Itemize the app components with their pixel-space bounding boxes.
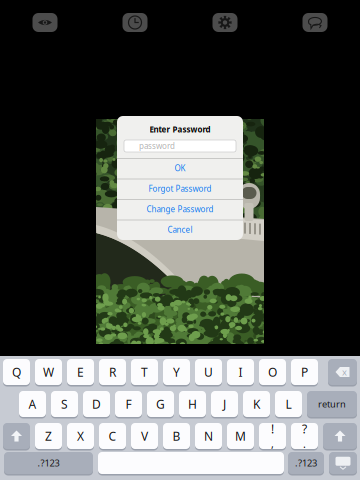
button[interactable] bbox=[323, 423, 357, 450]
button[interactable]: A bbox=[19, 391, 46, 418]
staticText: .?123 bbox=[295, 457, 317, 469]
staticText: K bbox=[253, 396, 260, 412]
staticText: password bbox=[139, 141, 175, 151]
button[interactable]: V bbox=[131, 423, 158, 450]
staticText: Q bbox=[12, 364, 21, 380]
staticText: ? bbox=[302, 421, 307, 437]
staticText: Cancel bbox=[167, 224, 192, 235]
button[interactable]: return bbox=[307, 391, 357, 418]
button[interactable]: Forgot Password bbox=[117, 178, 243, 199]
button[interactable]: N bbox=[195, 423, 222, 450]
button[interactable]: P bbox=[291, 359, 318, 386]
staticText: O bbox=[268, 364, 277, 380]
button[interactable]: G bbox=[147, 391, 174, 418]
button[interactable]: H bbox=[179, 391, 206, 418]
staticText: A bbox=[28, 396, 36, 412]
staticText: H bbox=[188, 396, 197, 412]
staticText: . bbox=[303, 437, 306, 451]
staticText: V bbox=[141, 428, 148, 444]
button[interactable]: X bbox=[67, 423, 94, 450]
staticText: L bbox=[285, 396, 291, 412]
button[interactable]: x bbox=[328, 359, 357, 386]
button[interactable]: .?123 bbox=[4, 452, 93, 475]
staticText: OK bbox=[174, 163, 185, 173]
button[interactable]: Cancel bbox=[117, 219, 243, 240]
button[interactable]: Q bbox=[3, 359, 30, 386]
staticText: R bbox=[109, 364, 116, 380]
staticText: I bbox=[238, 364, 242, 380]
button[interactable]: C bbox=[99, 423, 126, 450]
staticText: T bbox=[141, 364, 148, 380]
staticText: Forgot Password bbox=[148, 183, 211, 194]
button[interactable]: R bbox=[99, 359, 126, 386]
button[interactable] bbox=[3, 423, 30, 450]
button[interactable]: S bbox=[51, 391, 78, 418]
staticText: Y bbox=[173, 364, 180, 380]
button[interactable]: Chat bbox=[302, 13, 327, 32]
button[interactable]: History bbox=[122, 13, 147, 32]
button[interactable] bbox=[98, 452, 284, 475]
staticText: N bbox=[204, 428, 213, 444]
staticText: D bbox=[92, 396, 101, 412]
staticText: M bbox=[235, 428, 246, 444]
staticText: Enter Password bbox=[149, 124, 210, 135]
staticText: G bbox=[156, 396, 165, 412]
button[interactable]: L bbox=[275, 391, 302, 418]
button[interactable]: E bbox=[67, 359, 94, 386]
button[interactable]: Y bbox=[163, 359, 190, 386]
staticText: C bbox=[108, 428, 116, 444]
staticText: ! bbox=[271, 421, 274, 437]
button[interactable]: Z bbox=[35, 423, 62, 450]
staticText: Z bbox=[45, 428, 52, 444]
button[interactable] bbox=[329, 452, 357, 475]
button[interactable]: I bbox=[227, 359, 254, 386]
button[interactable]: W bbox=[35, 359, 62, 386]
staticText: W bbox=[43, 364, 54, 380]
staticText: E bbox=[77, 364, 84, 380]
staticText: .?123 bbox=[37, 457, 59, 469]
button[interactable]: T bbox=[131, 359, 158, 386]
staticText: U bbox=[204, 364, 213, 380]
staticText: return bbox=[318, 398, 346, 410]
button[interactable]: O bbox=[259, 359, 286, 386]
button[interactable]: Change Password bbox=[117, 199, 243, 219]
button[interactable]: Preview bbox=[32, 13, 57, 32]
staticText: B bbox=[172, 428, 180, 444]
button[interactable]: M bbox=[227, 423, 254, 450]
button[interactable]: B bbox=[163, 423, 190, 450]
staticText: , bbox=[271, 437, 274, 451]
staticText: J bbox=[223, 396, 226, 412]
button[interactable]: ? bbox=[291, 423, 318, 450]
staticText: P bbox=[301, 364, 308, 380]
button[interactable]: F bbox=[115, 391, 142, 418]
button[interactable]: J bbox=[211, 391, 238, 418]
staticText: F bbox=[125, 396, 131, 412]
staticText: X bbox=[77, 428, 84, 444]
staticText: Change Password bbox=[146, 204, 213, 214]
button[interactable]: ! bbox=[259, 423, 286, 450]
button[interactable]: D bbox=[83, 391, 110, 418]
button[interactable]: OK bbox=[117, 158, 243, 178]
button[interactable]: K bbox=[243, 391, 270, 418]
staticText: S bbox=[61, 396, 68, 412]
button[interactable]: .?123 bbox=[288, 452, 324, 475]
button[interactable]: Settings bbox=[212, 13, 237, 32]
button[interactable]: U bbox=[195, 359, 222, 386]
staticText: x bbox=[342, 366, 347, 378]
